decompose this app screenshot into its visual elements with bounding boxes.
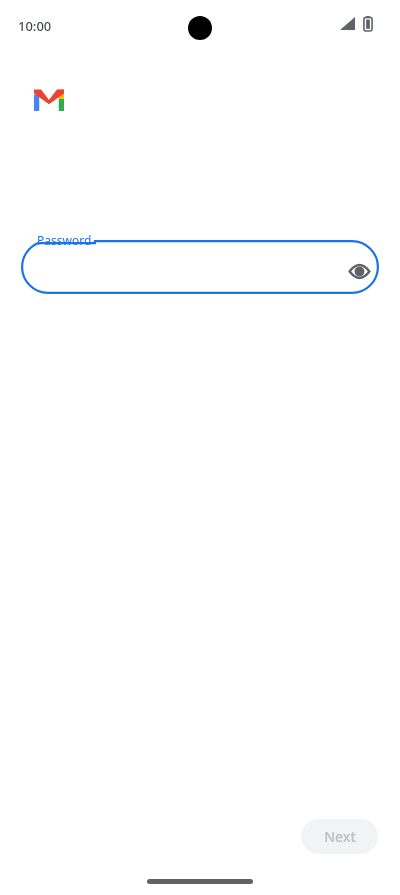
staticText: Next [324,827,356,846]
other: Gmail [34,87,64,111]
staticText: Password [37,232,92,248]
button[interactable]: Show password [341,253,377,289]
button[interactable]: Password [21,232,379,294]
staticText: 10:00 [18,17,52,35]
button[interactable]: Next [301,819,378,854]
